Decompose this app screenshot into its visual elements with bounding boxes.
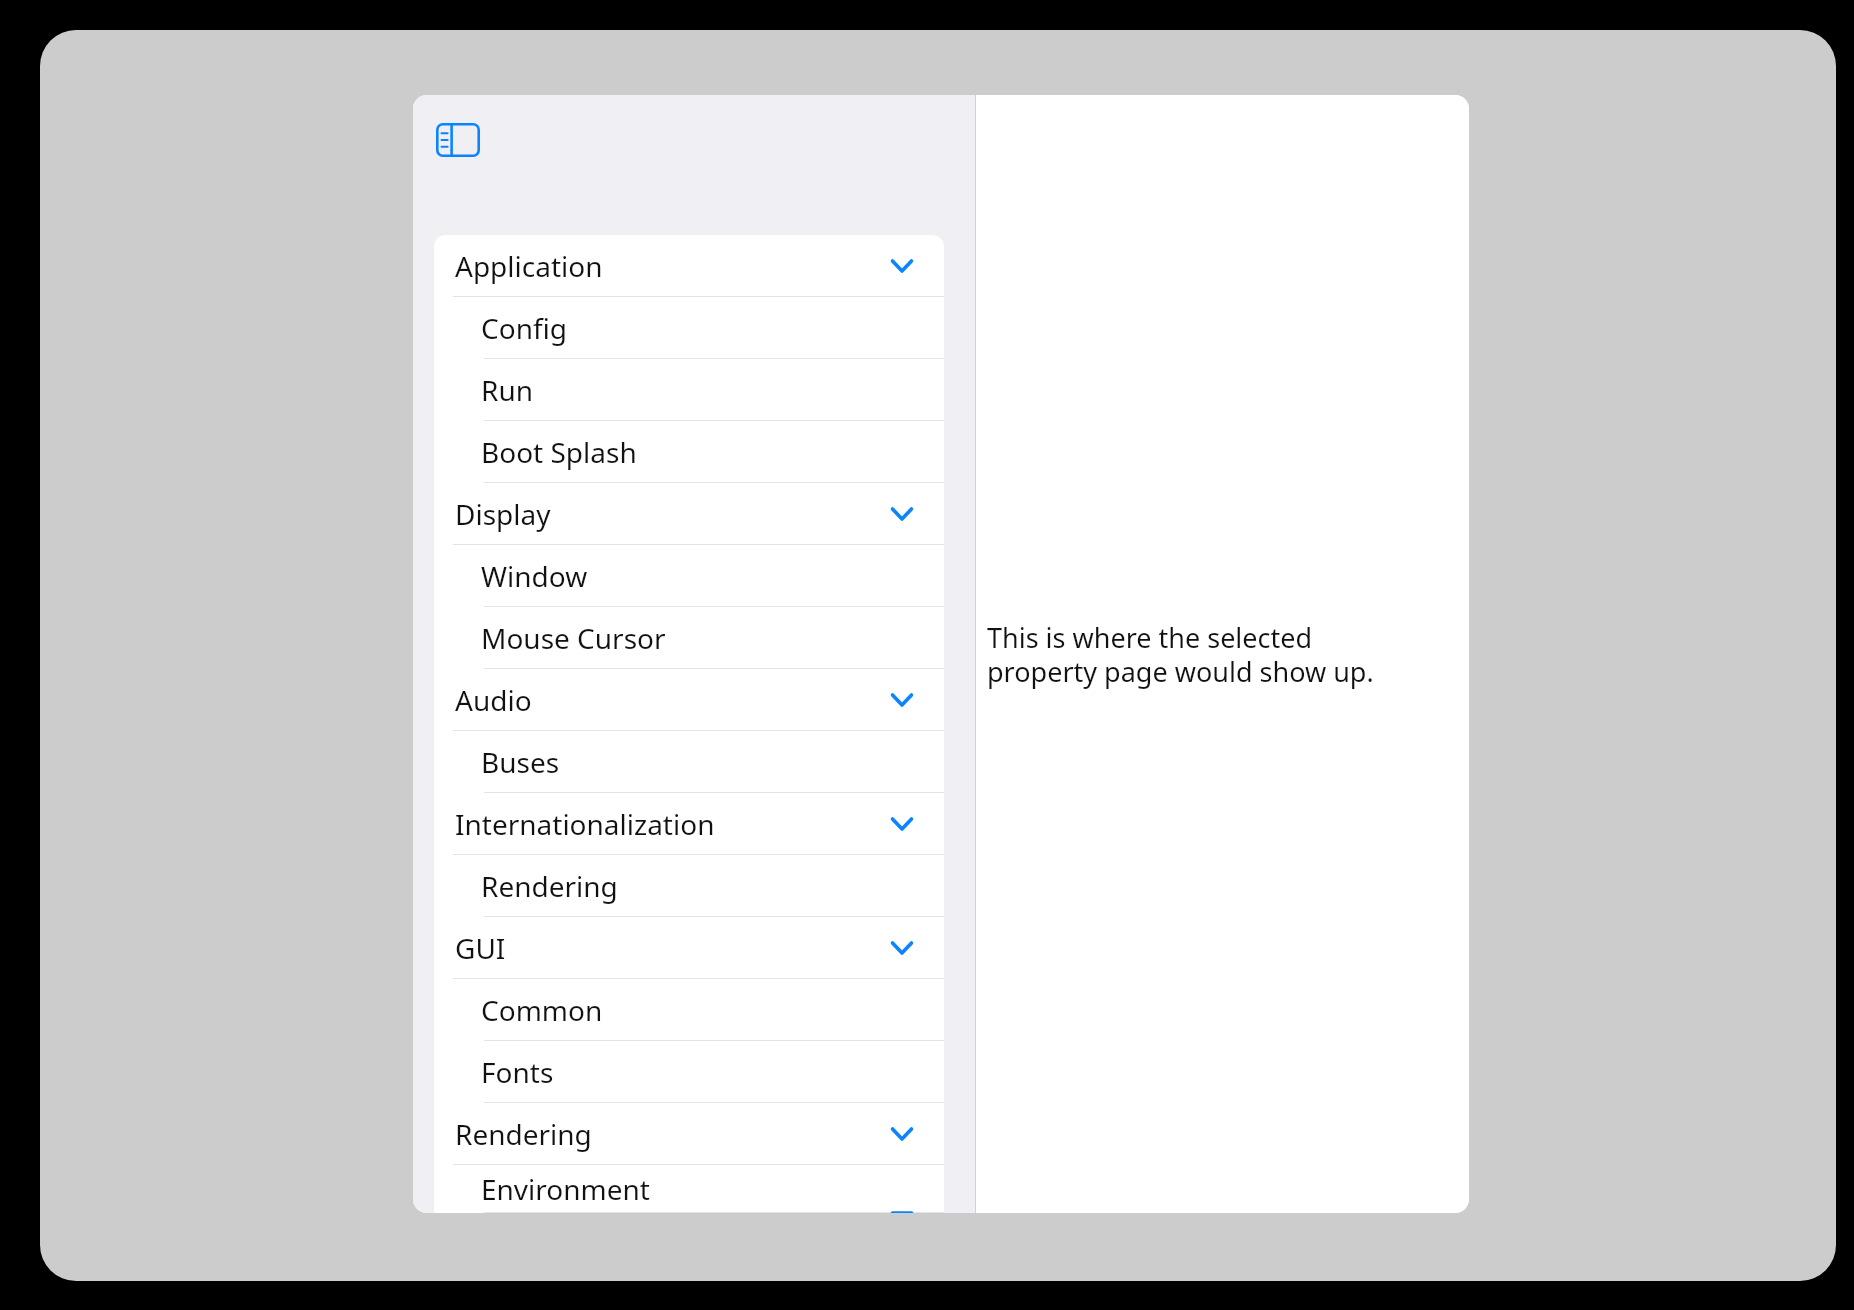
button[interactable]: Boot Splash	[434, 421, 944, 483]
staticText: Boot Splash	[481, 433, 637, 471]
button[interactable]: Mouse Cursor	[434, 607, 944, 669]
button[interactable]: Application	[434, 235, 944, 297]
staticText: GUI	[455, 929, 506, 967]
button[interactable]: Fonts	[434, 1041, 944, 1103]
staticText: Window	[481, 557, 588, 595]
button[interactable]: Run	[434, 359, 944, 421]
button[interactable]: Environment	[434, 1165, 944, 1213]
button[interactable]: Config	[434, 297, 944, 359]
button[interactable]: Buses	[434, 731, 944, 793]
button[interactable]: Rendering	[434, 1103, 944, 1165]
staticText: Rendering	[455, 1115, 592, 1153]
staticText: Audio	[455, 681, 532, 719]
staticText: Mouse Cursor	[481, 619, 666, 657]
button[interactable]: Audio	[434, 669, 944, 731]
button[interactable]: Window	[434, 545, 944, 607]
staticText: This is where the selected property page…	[987, 619, 1417, 690]
button[interactable]: Toggle sidebar	[434, 120, 482, 160]
button[interactable]: Display	[434, 483, 944, 545]
staticText: Common	[481, 991, 603, 1029]
staticText: Run	[481, 371, 534, 409]
button[interactable]: Rendering	[434, 855, 944, 917]
staticText: Config	[481, 309, 568, 347]
button[interactable]: GUI	[434, 917, 944, 979]
staticText: Rendering	[481, 867, 618, 905]
staticText: Fonts	[481, 1053, 554, 1091]
staticText: Buses	[481, 743, 560, 781]
staticText: Display	[455, 495, 551, 533]
staticText: Internationalization	[455, 805, 715, 843]
button[interactable]: Common	[434, 979, 944, 1041]
staticText: Environment	[481, 1170, 650, 1208]
staticText: Application	[455, 247, 603, 285]
button[interactable]: Internationalization	[434, 793, 944, 855]
